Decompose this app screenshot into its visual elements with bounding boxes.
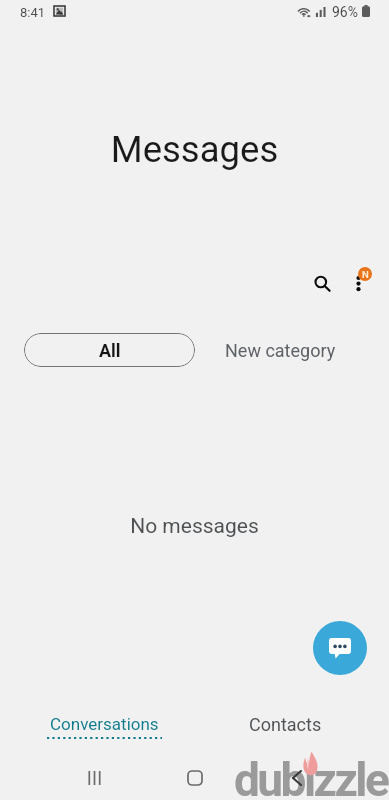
button[interactable]: All [24, 333, 195, 367]
button[interactable]: Contacts [205, 706, 365, 750]
staticText: New category [225, 340, 336, 361]
button[interactable]: New conversation [313, 621, 367, 675]
button[interactable]: Home [175, 758, 215, 798]
button[interactable]: New category [225, 333, 336, 367]
staticText: Conversations [50, 714, 159, 734]
button[interactable]: More options [338, 262, 378, 302]
button[interactable]: Search [301, 262, 341, 302]
staticText: N [362, 269, 369, 280]
button[interactable]: Back [277, 758, 317, 798]
staticText: Contacts [249, 714, 322, 735]
staticText: All [99, 340, 121, 361]
staticText: 96% [332, 4, 358, 20]
staticText: dubizzle [234, 753, 388, 800]
staticText: Messages [0, 128, 389, 171]
staticText: 8:41 [20, 5, 46, 20]
button[interactable]: Recents [74, 758, 114, 798]
staticText: No messages [0, 514, 389, 539]
button[interactable]: Conversations [23, 706, 186, 750]
